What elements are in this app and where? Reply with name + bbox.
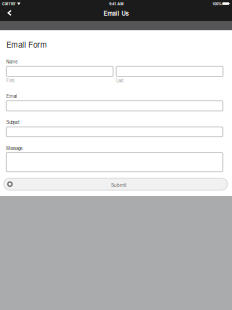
staticText: 100% <box>212 1 221 6</box>
staticText: Email Us <box>103 9 128 17</box>
button[interactable]: Email <box>6 101 223 111</box>
button[interactable]: Back <box>3 6 17 19</box>
staticText: Email Form <box>6 39 47 50</box>
staticText: Message <box>6 145 22 151</box>
staticText: Email <box>6 93 17 99</box>
staticText: Carrier <box>2 1 16 6</box>
button[interactable]: First name <box>6 66 113 76</box>
button[interactable]: Message <box>6 152 223 172</box>
staticText: Subject <box>6 119 19 125</box>
button[interactable]: Submit <box>4 178 227 190</box>
button[interactable]: Subject <box>6 127 223 137</box>
staticText: Submit <box>111 182 126 188</box>
button[interactable]: Last name <box>116 66 223 76</box>
staticText: Last <box>116 77 123 83</box>
staticText: 9:41 AM <box>109 1 123 6</box>
staticText: Name <box>6 58 17 65</box>
staticText: First <box>6 77 14 83</box>
